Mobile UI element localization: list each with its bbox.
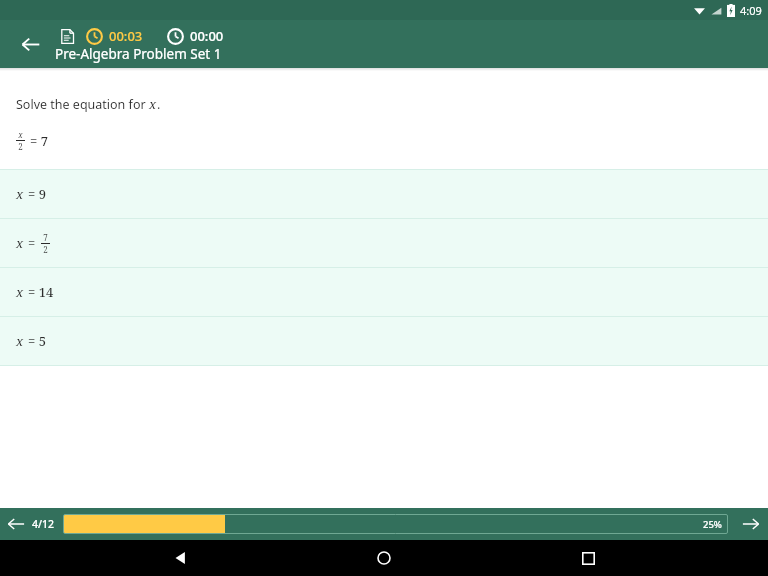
staticText: = 14	[28, 283, 54, 301]
staticText: =	[28, 234, 36, 252]
button[interactable]: 25%	[63, 514, 728, 534]
staticText: 00:00	[190, 27, 224, 45]
button[interactable]: x	[0, 219, 768, 267]
button[interactable]: Back	[10, 24, 50, 64]
button[interactable]: Problem sheet	[55, 24, 79, 48]
staticText: = 5	[28, 332, 46, 350]
button[interactable]: x	[0, 268, 768, 316]
button[interactable]: Next question	[734, 508, 768, 540]
button[interactable]: Recent apps	[564, 540, 612, 576]
staticText: 25%	[703, 518, 722, 531]
staticText: x	[16, 234, 24, 252]
staticText: x	[149, 95, 157, 113]
staticText: .	[157, 96, 161, 113]
staticText: x	[16, 185, 24, 203]
staticText: = 7	[30, 132, 48, 150]
button[interactable]: x	[0, 170, 768, 218]
staticText: x	[16, 283, 24, 301]
button[interactable]: 00:03	[85, 27, 144, 45]
staticText: 2	[18, 141, 23, 152]
staticText: Solve the equation for	[16, 96, 149, 113]
staticText: 4/12	[32, 517, 55, 531]
staticText: x	[18, 129, 23, 140]
staticText: x	[16, 332, 24, 350]
staticText: 4:09	[740, 3, 762, 18]
button[interactable]: x	[0, 317, 768, 365]
button[interactable]: Back	[156, 540, 204, 576]
staticText: 00:03	[109, 27, 143, 45]
staticText: Pre-Algebra Problem Set 1	[55, 45, 222, 63]
staticText: 7	[43, 232, 48, 243]
staticText: = 9	[28, 185, 46, 203]
button[interactable]: Previous question	[0, 508, 32, 540]
button[interactable]: 00:00	[166, 27, 225, 45]
button[interactable]: Home	[360, 540, 408, 576]
staticText: 2	[43, 244, 48, 255]
